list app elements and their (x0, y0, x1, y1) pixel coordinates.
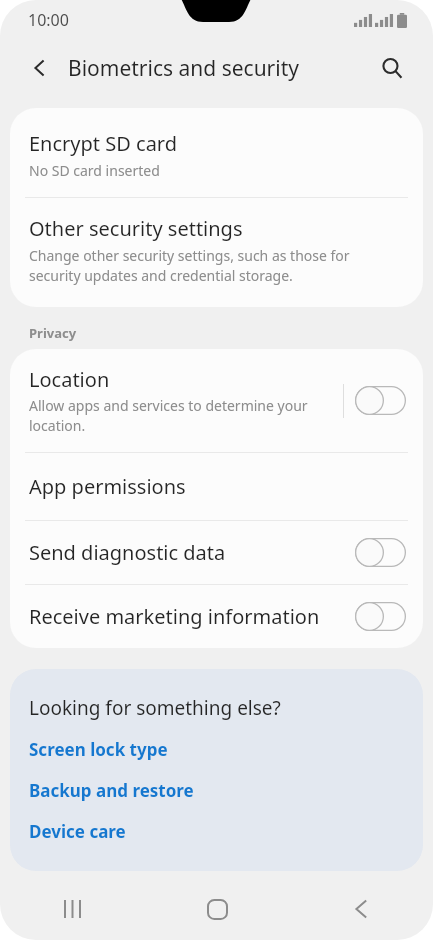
button[interactable]: Location (10, 349, 423, 452)
staticText: Screen lock type (29, 738, 168, 761)
button[interactable]: Backup and restore (29, 779, 194, 802)
staticText: 10:00 (28, 9, 69, 31)
staticText: Other security settings (29, 215, 243, 242)
staticText: Change other security settings, such as … (29, 246, 404, 285)
staticText: Backup and restore (29, 779, 194, 802)
button[interactable]: Home (145, 878, 289, 940)
button[interactable]: Back (289, 878, 433, 940)
staticText: Allow apps and services to determine you… (29, 396, 333, 435)
button[interactable]: Send diagnostic data (10, 521, 423, 584)
button[interactable]: App permissions (10, 453, 423, 520)
button[interactable]: Recents (0, 878, 145, 940)
button[interactable]: Receive marketing information toggle (355, 602, 406, 631)
staticText: App permissions (29, 473, 186, 500)
staticText: Location (29, 366, 110, 393)
button[interactable]: Search (371, 47, 413, 89)
staticText: No SD card inserted (29, 161, 160, 180)
button[interactable]: Location toggle (355, 386, 406, 415)
staticText: Send diagnostic data (29, 539, 355, 566)
button[interactable]: Back (20, 48, 60, 88)
staticText: Receive marketing information (29, 603, 355, 630)
button[interactable]: Device care (29, 820, 126, 843)
button[interactable]: Receive marketing information (10, 585, 423, 648)
staticText: Device care (29, 820, 126, 843)
staticText: Biometrics and security (68, 54, 299, 83)
button[interactable]: Encrypt SD card (10, 108, 423, 197)
staticText: Looking for something else? (29, 695, 281, 721)
staticText: Encrypt SD card (29, 130, 178, 157)
staticText: Privacy (29, 324, 77, 342)
button[interactable]: Send diagnostic data toggle (355, 538, 406, 567)
button[interactable]: Screen lock type (29, 738, 168, 761)
button[interactable]: Other security settings (10, 198, 423, 307)
